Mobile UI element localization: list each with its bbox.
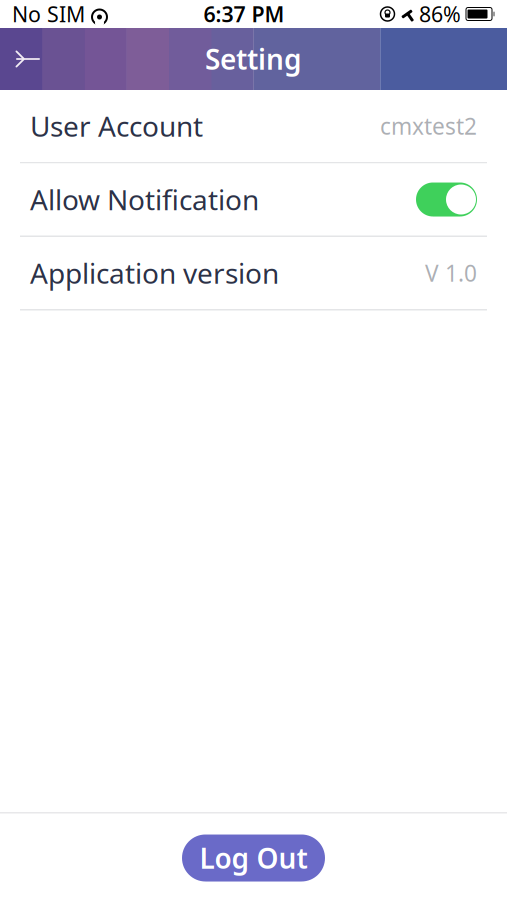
staticText: 86% xyxy=(419,0,461,28)
staticText: V 1.0 xyxy=(425,258,477,288)
staticText: User Account xyxy=(30,107,203,145)
staticText: Allow Notification xyxy=(30,181,259,218)
button[interactable]: User Account xyxy=(0,90,507,162)
staticText: 6:37 PM xyxy=(203,0,284,28)
staticText: cmxtest2 xyxy=(380,111,477,141)
button[interactable]: Allow Notification xyxy=(416,182,477,216)
staticText: Application version xyxy=(30,254,279,292)
button[interactable]: Log Out xyxy=(182,834,325,881)
button[interactable]: Back xyxy=(0,28,56,90)
staticText: No SIM xyxy=(12,0,85,28)
staticText: Log Out xyxy=(199,839,307,877)
staticText: Setting xyxy=(205,40,302,78)
